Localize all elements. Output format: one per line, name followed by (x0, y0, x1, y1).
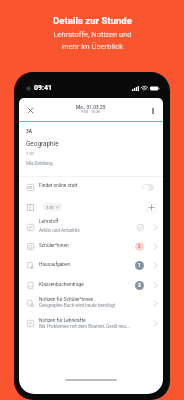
staticText: 3 (138, 283, 141, 288)
button[interactable] (19, 313, 163, 333)
staticText: Mo., 31.03.25 (76, 105, 106, 111)
button[interactable]: 2 (19, 236, 163, 256)
staticText: 1.01 (46, 205, 55, 210)
button[interactable]: Weitere Optionen (146, 104, 159, 117)
button[interactable]: Raum hinzufügen (146, 202, 157, 213)
staticText: mehr im Überblick (62, 42, 123, 51)
staticText: 1.01 (26, 151, 35, 156)
button[interactable] (19, 217, 163, 237)
staticText: Hausaufgaben (39, 262, 71, 268)
staticText: Schüler*innen (39, 243, 69, 249)
staticText: Findet online statt (39, 183, 78, 189)
button[interactable]: Schließen (24, 104, 37, 117)
staticText: Details zur Stunde (53, 15, 132, 26)
staticText: Arktis und Antarktis (39, 228, 80, 233)
staticText: Lehrstoffe, Notizen und (53, 30, 132, 39)
staticText: 09:41 (34, 84, 53, 92)
button[interactable]: 1 (19, 255, 163, 275)
button[interactable]: 3 (19, 275, 163, 295)
button[interactable]: 1.01 (43, 203, 62, 211)
staticText: 2 (138, 244, 141, 249)
staticText: Notizen für Lehrkräfte (39, 318, 86, 324)
staticText: Bei Problemen mit dem Beamer, Gerät neu.… (39, 324, 130, 329)
staticText: Notizen für Schüler*innen (39, 297, 94, 303)
staticText: Geographie Buch wird heute benötigt (39, 303, 116, 308)
staticText: Klassenbucheinträge (39, 282, 84, 288)
staticText: 3A (26, 129, 32, 135)
staticText: Geographie (26, 140, 59, 148)
staticText: Mia Deinberg (26, 161, 53, 166)
staticText: 9:50 - 10:35 (81, 110, 101, 114)
staticText: Lehrstoff (39, 219, 59, 225)
button[interactable]: Findet online statt (19, 180, 163, 195)
button[interactable] (19, 293, 163, 313)
staticText: 1 (138, 263, 141, 268)
